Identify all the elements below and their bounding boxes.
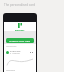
button[interactable]: Everyday xyxy=(6,49,34,55)
staticText: Spending xyxy=(6,69,15,72)
staticText: Everyday xyxy=(10,49,21,52)
staticText: Activate your card xyxy=(9,39,31,42)
staticText: greenpay xyxy=(15,29,25,32)
staticText: £ 1 200.00 xyxy=(10,52,20,55)
button[interactable]: Activate your card xyxy=(6,38,34,43)
staticText: ACCOUNTS xyxy=(6,45,17,48)
button[interactable]: More options xyxy=(29,51,34,54)
staticText: The personalised card xyxy=(4,3,36,7)
